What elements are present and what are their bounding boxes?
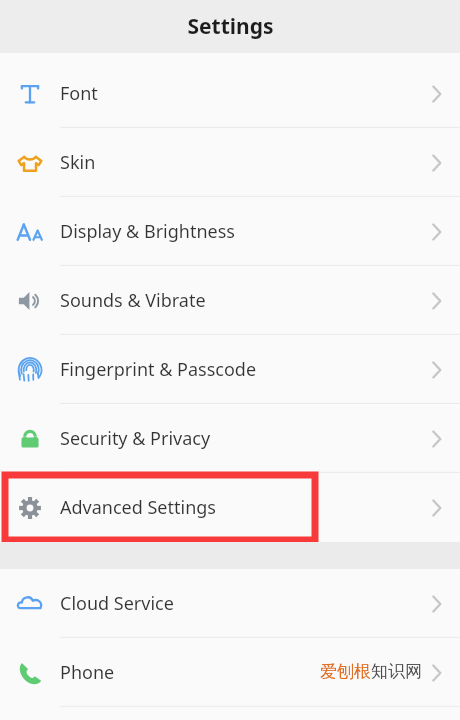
button[interactable]: Cloud Service [0, 569, 460, 638]
staticText: 爱刨根 [320, 661, 371, 682]
button[interactable]: Security & Privacy [0, 404, 460, 473]
staticText: Settings [187, 12, 274, 41]
staticText: Display & Brightness [60, 219, 235, 244]
button[interactable]: Fingerprint & Passcode [0, 335, 460, 404]
staticText: Sounds & Vibrate [60, 288, 206, 313]
button[interactable]: Sounds & Vibrate [0, 266, 460, 335]
staticText: Advanced Settings [60, 495, 216, 520]
button[interactable]: Phone [0, 638, 460, 707]
staticText: Fingerprint & Passcode [60, 357, 257, 382]
staticText: Cloud Service [60, 591, 174, 616]
staticText: Phone [60, 660, 115, 685]
staticText: Security & Privacy [60, 426, 211, 451]
button[interactable]: Display & Brightness [0, 197, 460, 266]
button[interactable]: Advanced Settings [0, 473, 460, 542]
staticText: Font [60, 81, 98, 106]
staticText: 知识网 [371, 661, 422, 682]
button[interactable]: Skin [0, 128, 460, 197]
staticText: Skin [60, 150, 96, 175]
button[interactable]: Font [0, 59, 460, 128]
